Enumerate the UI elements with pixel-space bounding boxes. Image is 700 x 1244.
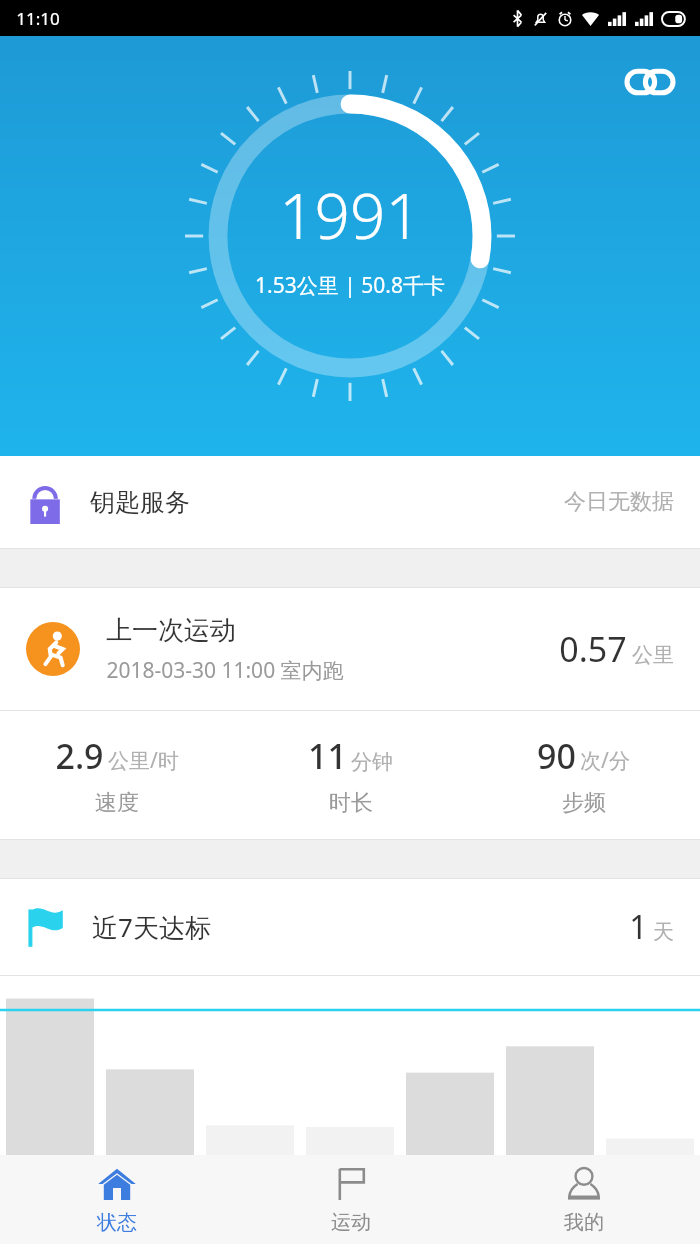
staticText: 状态 [97, 1210, 137, 1235]
staticText: 2.9 [55, 733, 104, 779]
staticText: 1.53公里 | 50.8千卡 [255, 271, 445, 300]
staticText: 时长 [329, 789, 373, 817]
button[interactable]: 我的 [467, 1155, 700, 1244]
staticText: 近7天达标 [92, 909, 211, 945]
button[interactable]: 90 [467, 711, 700, 839]
button[interactable]: Link device [622, 54, 678, 110]
staticText: 速度 [95, 789, 139, 817]
staticText: 11 [308, 733, 347, 779]
staticText: 我的 [564, 1210, 604, 1235]
button[interactable]: 上一次运动 [0, 588, 700, 710]
staticText: 运动 [331, 1210, 371, 1235]
button[interactable]: 状态 [0, 1155, 234, 1244]
button[interactable]: 11 [234, 711, 467, 839]
staticText: 钥匙服务 [90, 487, 190, 518]
staticText: 11:10 [16, 7, 60, 30]
button[interactable]: 2.9 [0, 711, 234, 839]
staticText: 次/分 [580, 746, 630, 775]
button[interactable]: 钥匙服务 [0, 456, 700, 548]
staticText: 1 [629, 905, 648, 949]
staticText: 1991 [279, 173, 421, 257]
button[interactable]: 近7天达标 [0, 879, 700, 975]
staticText: 2018-03-30 11:00 室内跑 [106, 656, 344, 685]
staticText: 90 [537, 733, 576, 779]
staticText: 步频 [562, 789, 606, 817]
staticText: 上一次运动 [106, 614, 236, 647]
staticText: 天 [653, 919, 674, 945]
staticText: 0.57 [559, 626, 627, 672]
staticText: 今日无数据 [564, 488, 674, 516]
staticText: 分钟 [351, 749, 393, 775]
staticText: 公里 [632, 642, 674, 668]
staticText: 公里/时 [108, 746, 179, 775]
button[interactable]: 运动 [234, 1155, 467, 1244]
